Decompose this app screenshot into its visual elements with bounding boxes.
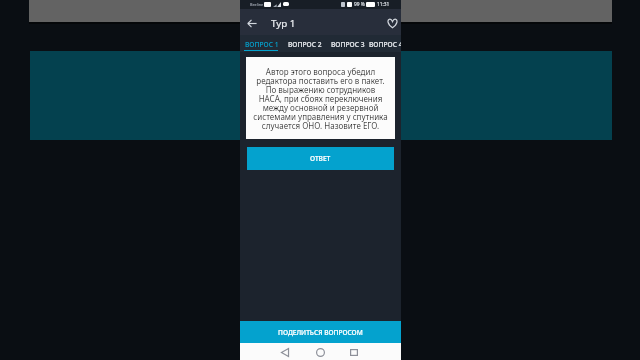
staticText: Автор этого вопроса убедил редактора пос… [253,66,388,132]
button[interactable]: Recents [340,343,368,360]
button[interactable]: ВОПРОС 4 [369,35,401,52]
staticText: 11:31 [377,1,390,8]
button[interactable]: ВОПРОС 1 [240,35,283,52]
staticText: Тур 1 [271,17,296,30]
staticText: ВОПРОС 2 [288,40,322,49]
staticText: 99 % [354,1,365,8]
button[interactable]: ВОПРОС 2 [283,35,326,52]
staticText: ВОПРОС 1 [245,40,279,49]
button[interactable]: Favorite [384,15,400,31]
button[interactable]: Back [244,15,260,31]
button[interactable]: Home [306,343,334,360]
button[interactable]: ОТВЕТ [247,147,394,170]
button[interactable]: Back [271,343,299,360]
staticText: ПОДЕЛИТЬСЯ ВОПРОСОМ [278,328,363,337]
button[interactable]: ПОДЕЛИТЬСЯ ВОПРОСОМ [240,321,401,343]
staticText: ВОПРОС 3 [331,40,365,49]
button[interactable]: ВОПРОС 3 [326,35,369,52]
staticText: ОТВЕТ [310,154,331,163]
staticText: ВОПРОС 4 [369,40,401,49]
staticText: Beeline [250,2,264,7]
